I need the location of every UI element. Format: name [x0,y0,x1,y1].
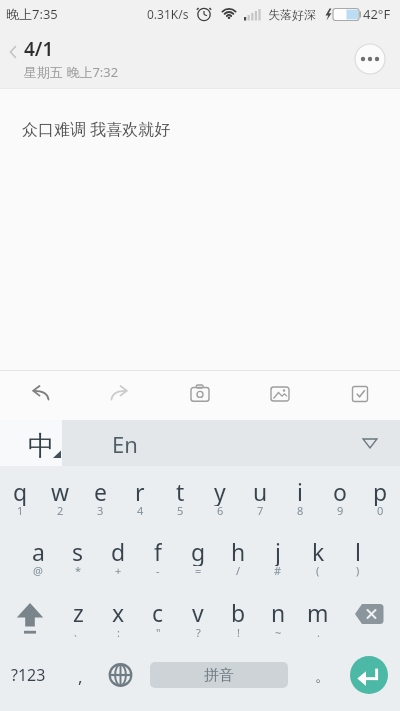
button[interactable]: z [58,597,98,627]
staticText: g [191,536,206,566]
staticText: / [236,563,241,578]
button[interactable]: v [178,597,218,627]
button[interactable]: e [80,476,120,506]
button[interactable]: k [298,536,338,566]
button[interactable] [0,420,62,466]
button[interactable]: c [138,597,178,627]
staticText: 9 [337,503,344,518]
button[interactable]: ?123 [0,660,56,690]
staticText: v [192,597,204,627]
button[interactable]: f [138,536,178,566]
staticText: = [195,563,202,578]
button[interactable]: u [240,476,280,506]
button[interactable]: w [40,476,80,506]
button[interactable] [0,36,24,80]
button[interactable] [80,371,160,420]
staticText: 。 [315,667,330,686]
staticText: b [231,597,246,627]
staticText: 8 [297,503,304,518]
staticText: f [154,536,162,566]
staticText: a [32,536,45,566]
button[interactable]: o [320,476,360,506]
button[interactable]: g [178,536,218,566]
staticText: s [72,536,84,566]
staticText: 失落好深 [268,7,316,22]
staticText: ! [237,625,240,640]
staticText: 42°F [363,5,391,23]
staticText: x [112,597,125,627]
staticText: 众口难调 我喜欢就好 [22,118,171,140]
staticText: 4/1 [24,36,54,62]
staticText: - [156,563,160,578]
staticText: k [312,536,325,566]
button[interactable]: , [65,661,95,691]
staticText: q [13,476,28,506]
button[interactable]: a [18,536,58,566]
staticText: m [307,597,329,627]
staticText: r [135,476,145,506]
staticText: 5 [177,503,184,518]
staticText: @ [33,563,43,578]
button[interactable] [350,420,400,466]
staticText: h [231,536,246,566]
staticText: " [156,625,161,640]
staticText: + [115,563,122,578]
staticText: 3 [97,503,104,518]
staticText: w [51,476,70,506]
button[interactable]: r [120,476,160,506]
button[interactable]: n [258,597,298,627]
button[interactable] [350,656,388,694]
button[interactable]: l [338,536,378,566]
button[interactable]: En [95,429,155,459]
staticText: # [274,563,282,578]
staticText: ) [356,563,360,578]
staticText: 晚上7:35 [6,5,58,23]
staticText: c [152,597,164,627]
staticText: j [275,536,281,566]
button[interactable]: 。 [307,661,337,691]
staticText: ( [316,563,320,578]
button[interactable]: j [258,536,298,566]
button[interactable] [0,371,80,420]
staticText: 2 [57,503,64,518]
staticText: l [355,536,361,566]
staticText: p [373,476,388,506]
staticText: ? [196,625,201,640]
staticText: y [214,476,226,506]
staticText: d [111,536,126,566]
button[interactable]: 拼音 [150,662,288,688]
button[interactable]: h [218,536,258,566]
button[interactable]: q [0,476,40,506]
staticText: t [176,476,185,506]
staticText: u [253,476,268,506]
button[interactable]: p [360,476,400,506]
button[interactable]: m [298,597,338,627]
button[interactable]: d [98,536,138,566]
button[interactable] [240,371,320,420]
button[interactable]: y [200,476,240,506]
button[interactable] [160,371,240,420]
button[interactable] [104,658,138,692]
staticText: 拼音 [204,666,234,685]
staticText: ~ [275,625,282,640]
staticText: 7 [257,503,264,518]
staticText: n [271,597,286,627]
staticText: i [297,476,303,506]
staticText: 、 [73,625,84,639]
staticText: 6 [217,503,224,518]
button[interactable]: i [280,476,320,506]
button[interactable] [320,371,400,420]
button[interactable]: b [218,597,258,627]
button[interactable]: x [98,597,138,627]
button[interactable] [340,592,396,636]
button[interactable]: t [160,476,200,506]
staticText: * [75,563,82,578]
button[interactable] [4,592,56,636]
staticText: 0 [377,503,384,518]
button[interactable]: s [58,536,98,566]
staticText: 1 [17,503,24,518]
staticText: . [317,625,320,640]
staticText: 4 [137,503,144,518]
button[interactable] [355,44,385,74]
staticText: 0.31K/s [147,6,189,22]
